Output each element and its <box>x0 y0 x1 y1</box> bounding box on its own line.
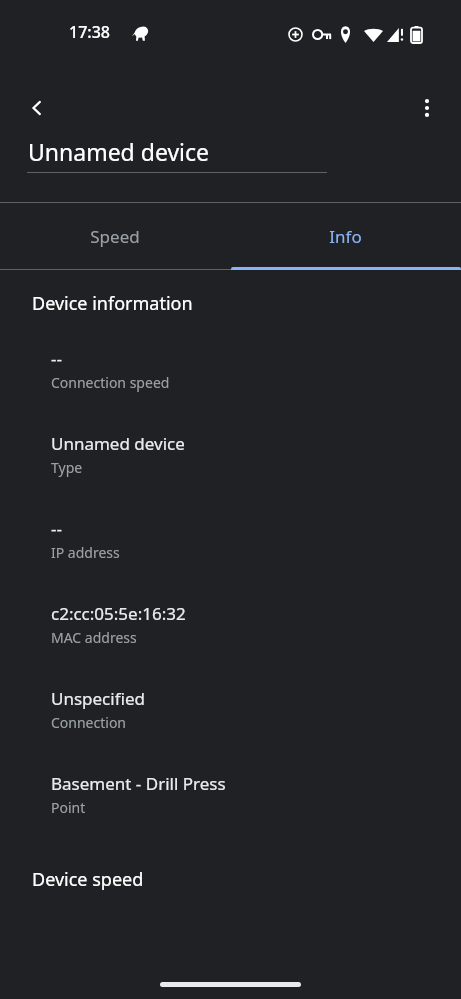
staticText: Connection speed <box>51 373 170 392</box>
button[interactable]: Speed <box>0 203 230 270</box>
staticText: Device speed <box>32 867 144 892</box>
staticText: Info <box>329 225 362 248</box>
staticText: -- <box>51 517 62 540</box>
staticText: 17:38 <box>69 21 110 43</box>
button[interactable]: Unnamed device <box>0 432 461 477</box>
button[interactable]: Basement - Drill Press <box>0 772 461 817</box>
staticText: Connection <box>51 713 127 732</box>
button[interactable]: More options <box>403 84 451 132</box>
staticText: Speed <box>90 225 140 248</box>
button[interactable]: -- <box>0 347 461 392</box>
staticText: Unnamed device <box>51 432 185 455</box>
button[interactable]: Back <box>13 84 61 132</box>
staticText: IP address <box>51 543 120 562</box>
button[interactable]: -- <box>0 517 461 562</box>
button[interactable]: Info <box>230 203 461 270</box>
staticText: c2:cc:05:5e:16:32 <box>51 602 186 625</box>
staticText: Device information <box>32 291 193 316</box>
staticText: -- <box>51 347 62 370</box>
button[interactable]: Unnamed device <box>28 136 210 167</box>
staticText: Type <box>51 458 83 477</box>
staticText: Unspecified <box>51 687 145 710</box>
button[interactable]: c2:cc:05:5e:16:32 <box>0 602 461 647</box>
staticText: Basement - Drill Press <box>51 772 226 795</box>
button[interactable]: Unspecified <box>0 687 461 732</box>
staticText: Point <box>51 798 86 817</box>
staticText: MAC address <box>51 628 137 647</box>
